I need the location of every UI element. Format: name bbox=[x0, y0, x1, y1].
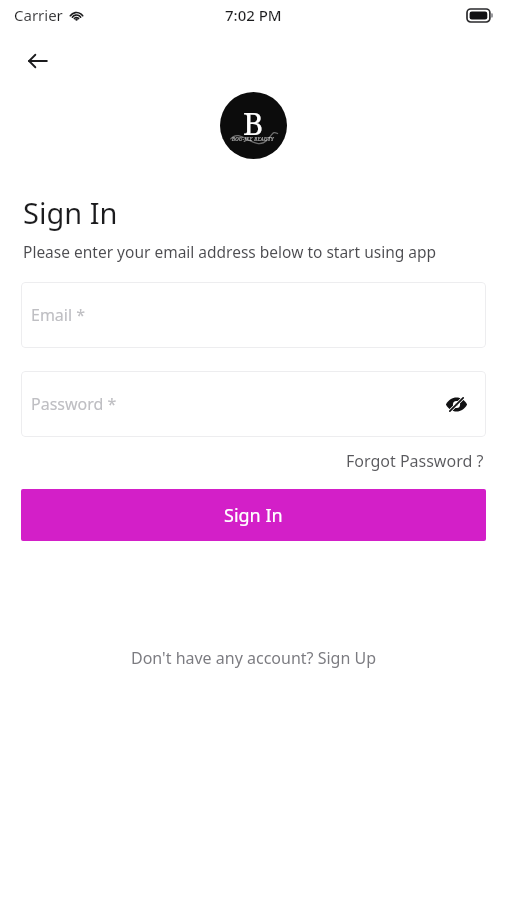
button[interactable]: Don't have any account? Sign Up bbox=[123, 641, 384, 675]
staticText: Email * bbox=[31, 304, 86, 326]
button[interactable]: Password * bbox=[21, 371, 486, 437]
staticText: B bbox=[243, 102, 264, 144]
button[interactable]: Show password bbox=[438, 386, 474, 422]
staticText: BOU-JEE BEAUTY bbox=[232, 136, 275, 142]
button[interactable]: Forgot Password ? bbox=[344, 446, 486, 476]
staticText: Password * bbox=[31, 393, 117, 415]
button[interactable]: Back bbox=[16, 39, 60, 83]
staticText: Please enter your email address below to… bbox=[23, 241, 437, 262]
button[interactable]: Sign In bbox=[21, 489, 486, 541]
staticText: Don't have any account? Sign Up bbox=[131, 647, 376, 669]
staticText: Sign In bbox=[23, 193, 118, 232]
staticText: Sign In bbox=[224, 503, 283, 528]
staticText: 7:02 PM bbox=[225, 5, 282, 25]
staticText: Forgot Password ? bbox=[346, 450, 484, 472]
button[interactable]: Email * bbox=[21, 282, 486, 348]
staticText: Carrier bbox=[14, 5, 63, 25]
